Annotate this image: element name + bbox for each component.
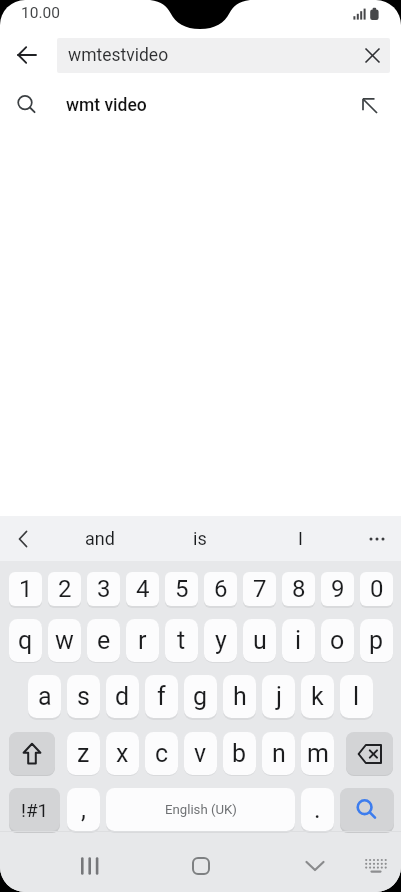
staticText: 3	[97, 575, 111, 603]
button[interactable]: n	[262, 732, 295, 775]
staticText: v	[194, 739, 207, 768]
button[interactable]: q	[9, 619, 42, 662]
button[interactable]: z	[67, 732, 100, 775]
staticText: k	[311, 682, 324, 711]
button[interactable]	[362, 524, 392, 554]
button[interactable]: and	[70, 516, 130, 561]
button[interactable]: c	[145, 732, 178, 775]
button[interactable]: e	[87, 619, 120, 662]
button[interactable]	[291, 846, 339, 886]
button[interactable]: s	[67, 675, 100, 718]
staticText: x	[116, 739, 129, 768]
button[interactable]: 7	[243, 572, 276, 606]
button[interactable]: 4	[126, 572, 159, 606]
staticText: 1	[19, 575, 33, 603]
button[interactable]: !#1	[9, 788, 60, 831]
button[interactable]	[177, 846, 225, 886]
staticText: t	[177, 626, 186, 655]
button[interactable]: 9	[321, 572, 354, 606]
staticText: I	[298, 528, 303, 549]
staticText: l	[353, 682, 360, 711]
button[interactable]: o	[321, 619, 354, 662]
staticText: 6	[214, 575, 228, 603]
button[interactable]: j	[262, 675, 295, 718]
button[interactable]	[8, 524, 38, 554]
staticText: 2	[58, 575, 72, 603]
staticText: 0	[370, 575, 384, 603]
button[interactable]: 5	[165, 572, 198, 606]
button[interactable]: t	[165, 619, 198, 662]
staticText: z	[77, 739, 90, 768]
button[interactable]: 1	[9, 572, 42, 606]
staticText: ,	[81, 795, 86, 824]
staticText: h	[233, 682, 247, 711]
staticText: wmtestvideo	[68, 45, 169, 66]
staticText: g	[193, 682, 208, 711]
staticText: s	[77, 682, 90, 711]
button[interactable]: x	[106, 732, 139, 775]
button[interactable]: I	[270, 516, 330, 561]
staticText: d	[115, 682, 130, 711]
button[interactable]: v	[184, 732, 217, 775]
staticText: 7	[253, 575, 267, 603]
staticText: f	[157, 682, 166, 711]
button[interactable]: b	[223, 732, 256, 775]
button[interactable]: l	[340, 675, 373, 718]
button[interactable]: English (UK)	[106, 788, 295, 831]
button[interactable]: f	[145, 675, 178, 718]
staticText: u	[253, 626, 267, 655]
button[interactable]: 8	[282, 572, 315, 606]
button[interactable]: 0	[360, 572, 393, 606]
button[interactable]: w	[48, 619, 81, 662]
button[interactable]: p	[360, 619, 393, 662]
staticText: q	[18, 626, 33, 655]
staticText: and	[85, 528, 115, 549]
button[interactable]: .	[301, 788, 334, 831]
button[interactable]: i	[282, 619, 315, 662]
button[interactable]: wmt video	[0, 85, 401, 125]
staticText: 8	[292, 575, 306, 603]
staticText: 5	[175, 575, 189, 603]
staticText: i	[295, 626, 302, 655]
staticText: is	[193, 528, 207, 549]
button[interactable]	[346, 732, 393, 775]
staticText: .	[314, 795, 321, 824]
button[interactable]: is	[170, 516, 230, 561]
button[interactable]: m	[301, 732, 334, 775]
button[interactable]	[355, 38, 390, 73]
button[interactable]: u	[243, 619, 276, 662]
staticText: j	[276, 682, 282, 711]
staticText: p	[369, 626, 384, 655]
button[interactable]	[358, 850, 394, 882]
button[interactable]: h	[223, 675, 256, 718]
button[interactable]: ,	[67, 788, 100, 831]
button[interactable]: k	[301, 675, 334, 718]
button[interactable]: y	[204, 619, 237, 662]
button[interactable]	[66, 846, 114, 886]
staticText: y	[215, 626, 227, 655]
staticText: wmt video	[66, 95, 147, 116]
staticText: 9	[331, 575, 345, 603]
button[interactable]: a	[28, 675, 61, 718]
button[interactable]: d	[106, 675, 139, 718]
staticText: b	[232, 739, 247, 768]
staticText: n	[272, 739, 286, 768]
button[interactable]	[9, 732, 55, 775]
button[interactable]: g	[184, 675, 217, 718]
staticText: r	[138, 626, 147, 655]
staticText: !#1	[21, 799, 49, 821]
button[interactable]: r	[126, 619, 159, 662]
staticText: m	[307, 739, 329, 768]
staticText: o	[330, 626, 345, 655]
staticText: c	[155, 739, 169, 768]
staticText: 4	[136, 575, 150, 603]
staticText: w	[55, 626, 74, 655]
button[interactable]	[13, 41, 41, 69]
button[interactable]: 6	[204, 572, 237, 606]
staticText: English (UK)	[165, 802, 237, 817]
button[interactable]: wmtestvideo	[57, 38, 390, 73]
button[interactable]	[340, 788, 394, 831]
button[interactable]: 3	[87, 572, 120, 606]
staticText: 10.00	[21, 4, 60, 22]
button[interactable]: 2	[48, 572, 81, 606]
